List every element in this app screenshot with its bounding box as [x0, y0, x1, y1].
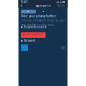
staticText: Smart Location: [22, 33, 43, 36]
staticText: ExpressVPN: [35, 4, 50, 7]
staticText: Done: [57, 4, 65, 7]
staticText: 9:41: [21, 0, 28, 4]
button[interactable]: Shortcut: [21, 44, 28, 51]
staticText: Take your privacy further: [21, 14, 56, 18]
staticText: Choose a location closer to you: [21, 19, 65, 22]
button[interactable]: Smart Location: [21, 32, 45, 38]
staticText: Off: [61, 46, 65, 50]
staticText: and stay fast on the web.: [21, 23, 55, 27]
button[interactable]: Back: [19, 4, 24, 8]
staticText: Network: [24, 39, 36, 42]
button[interactable]: Done: [56, 4, 66, 8]
staticText: Recommended: [24, 25, 47, 29]
